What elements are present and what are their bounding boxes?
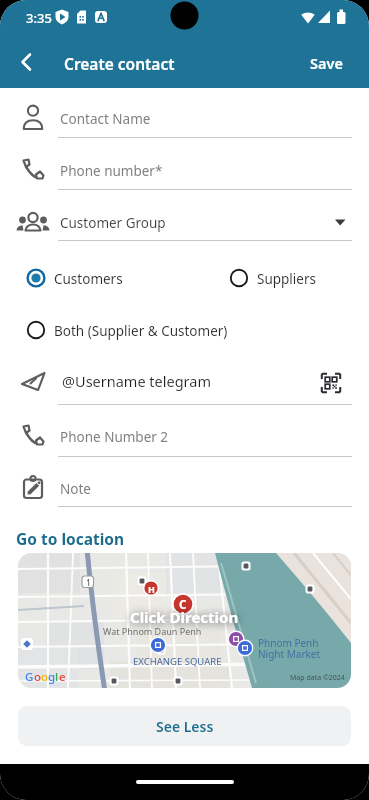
staticText: Phone Number 2: [60, 428, 169, 446]
button[interactable]: [10, 46, 46, 80]
staticText: Phone number*: [60, 162, 163, 180]
staticText: Customer Group: [60, 214, 166, 232]
button[interactable]: [20, 314, 240, 346]
staticText: See Less: [156, 717, 214, 736]
staticText: Click Direction: [130, 607, 239, 627]
staticText: Contact Name: [60, 110, 151, 128]
staticText: Wat Phnom Daun Penh: [103, 625, 202, 637]
button[interactable]: [20, 262, 140, 294]
button[interactable]: Save: [298, 46, 354, 80]
button[interactable]: [0, 96, 369, 138]
staticText: H: [148, 583, 155, 595]
staticText: Phnom Penh Night Market: [258, 636, 321, 661]
staticText: Note: [60, 480, 91, 498]
staticText: 3:35: [26, 9, 52, 27]
staticText: g: [48, 669, 56, 685]
button[interactable]: [0, 362, 369, 406]
button[interactable]: [0, 200, 369, 242]
staticText: Go to location: [16, 528, 125, 549]
button[interactable]: [224, 262, 334, 294]
staticText: C: [179, 597, 187, 613]
staticText: Customers: [54, 270, 123, 288]
staticText: @Username telegram: [62, 371, 211, 391]
staticText: Map data ©2024: [290, 673, 345, 683]
staticText: Suppliers: [257, 270, 316, 288]
staticText: Create contact: [64, 53, 175, 74]
button[interactable]: See Less: [18, 706, 351, 746]
button[interactable]: [0, 414, 369, 456]
staticText: l: [55, 669, 59, 685]
staticText: e: [59, 669, 66, 685]
button[interactable]: [318, 370, 344, 396]
button[interactable]: [0, 148, 369, 190]
staticText: o: [34, 669, 42, 685]
staticText: o: [41, 669, 49, 685]
staticText: 1: [86, 577, 91, 589]
staticText: EXCHANGE SQUARE: [133, 655, 222, 668]
button[interactable]: [0, 466, 369, 508]
button[interactable]: H: [18, 553, 351, 688]
staticText: Save: [310, 53, 343, 73]
staticText: G: [25, 669, 34, 685]
staticText: Both (Supplier & Customer): [54, 322, 228, 340]
